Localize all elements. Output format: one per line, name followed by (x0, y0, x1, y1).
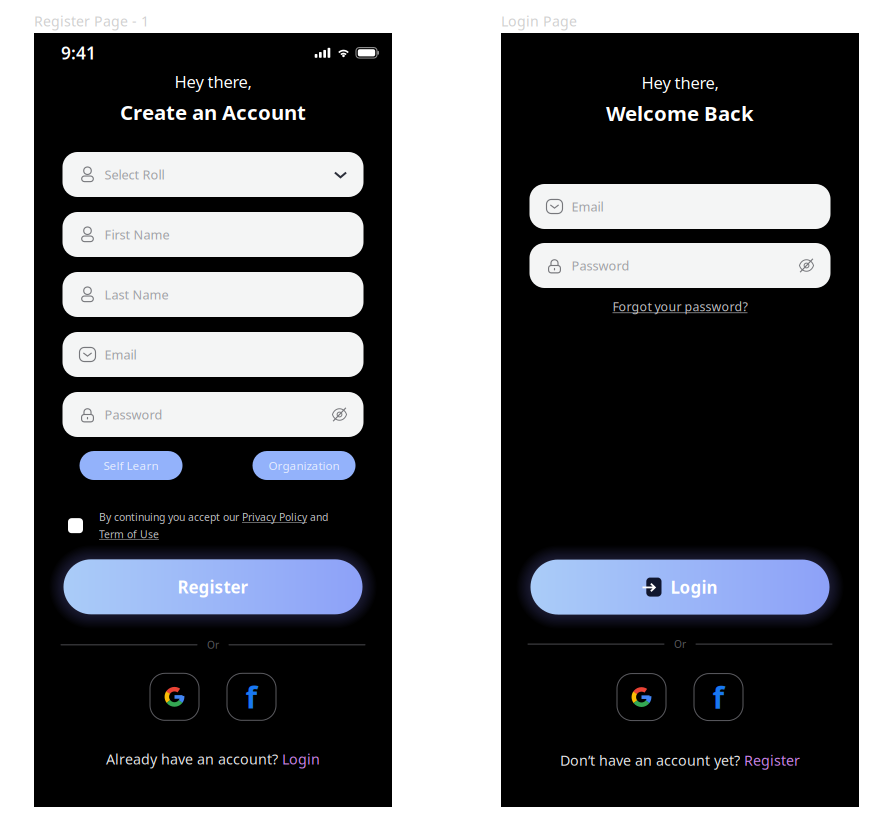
staticText: By continuing you accept our Privacy Pol… (99, 510, 328, 524)
staticText: Register (744, 751, 800, 770)
staticText: Self Learn (103, 458, 158, 473)
staticText: Create an Account (120, 98, 306, 126)
button[interactable]: Login (519, 560, 840, 615)
staticText: Hey there, (174, 70, 251, 93)
staticText: Email (571, 198, 603, 215)
staticText: Email (104, 346, 136, 363)
button[interactable]: Continue with Google (150, 673, 199, 720)
staticText: Last Name (104, 286, 168, 303)
staticText: Password (104, 406, 162, 423)
staticText: Or (207, 638, 219, 652)
button[interactable]: Register (52, 559, 373, 614)
button[interactable]: Last Name (62, 272, 363, 317)
staticText: Login (282, 749, 320, 769)
button[interactable]: Self Learn (79, 451, 182, 480)
staticText: Already have an account? (106, 749, 282, 769)
button[interactable]: Register (744, 751, 800, 770)
staticText: Password (571, 257, 629, 274)
button[interactable]: Accept terms and conditions (68, 518, 83, 533)
button[interactable]: Organization (252, 451, 355, 480)
button[interactable]: Continue with Google (617, 674, 666, 721)
staticText: Register Page - 1 (34, 11, 149, 31)
button[interactable]: Forgot your password? (612, 298, 747, 315)
button[interactable]: Continue with Facebook (694, 674, 743, 721)
staticText: Welcome Back (606, 99, 754, 127)
staticText: Or (674, 637, 686, 651)
staticText: Don’t have an account yet? (560, 751, 744, 770)
button[interactable]: Select Roll (62, 152, 363, 197)
button[interactable]: Email (62, 332, 363, 377)
button[interactable]: First Name (62, 212, 363, 257)
staticText: f (712, 676, 724, 718)
staticText: Register (177, 575, 248, 598)
staticText: Hey there, (641, 71, 718, 94)
staticText: Organization (268, 458, 339, 473)
button[interactable]: Password (529, 243, 830, 288)
staticText: First Name (104, 226, 169, 243)
staticText: Forgot your password? (612, 298, 747, 315)
button[interactable]: Continue with Facebook (227, 673, 276, 720)
button[interactable]: Login (282, 749, 320, 769)
staticText: Login Page (501, 11, 577, 31)
button[interactable]: Password (62, 392, 363, 437)
staticText: Select Roll (104, 166, 164, 183)
staticText: Term of Use (99, 527, 159, 541)
button[interactable]: Email (529, 184, 830, 229)
staticText: f (245, 676, 257, 717)
staticText: Login (670, 575, 717, 599)
staticText: 9:41 (61, 41, 96, 65)
